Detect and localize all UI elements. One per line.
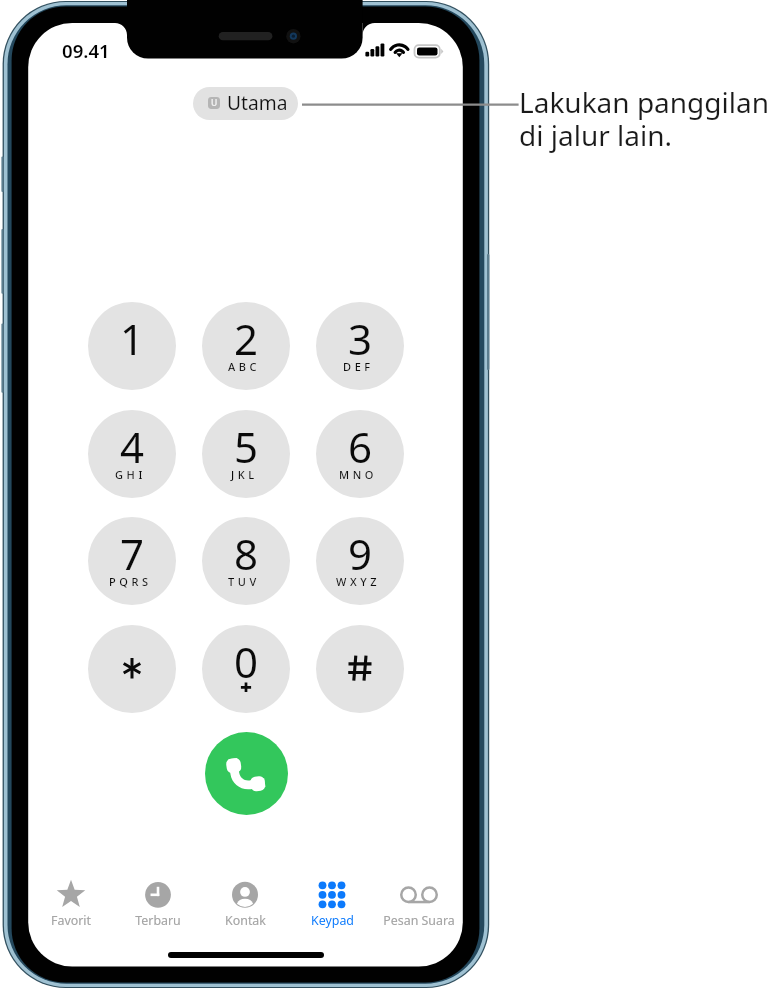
staticText: 7 bbox=[120, 525, 145, 582]
staticText: GHI bbox=[115, 467, 146, 482]
button[interactable]: 6 bbox=[316, 410, 404, 498]
button[interactable]: 3 bbox=[316, 302, 404, 390]
button[interactable]: 8 bbox=[202, 517, 290, 605]
button[interactable]: Keypad bbox=[289, 874, 375, 928]
button[interactable]: Star bbox=[88, 625, 176, 713]
staticText: Terbaru bbox=[135, 912, 181, 929]
staticText: Kontak bbox=[225, 912, 266, 929]
button[interactable]: 1 bbox=[88, 302, 176, 390]
staticText: 09.41 bbox=[62, 38, 110, 63]
button[interactable]: 7 bbox=[88, 517, 176, 605]
staticText: MNO bbox=[339, 467, 378, 482]
button[interactable]: Pound bbox=[316, 625, 404, 713]
button[interactable]: 2 bbox=[202, 302, 290, 390]
button[interactable]: U bbox=[193, 87, 298, 120]
staticText: WXYZ bbox=[336, 574, 381, 589]
staticText: Keypad bbox=[311, 912, 354, 929]
staticText: ABC bbox=[228, 359, 261, 374]
button[interactable]: 4 bbox=[88, 410, 176, 498]
button[interactable]: Favorit bbox=[28, 874, 114, 928]
staticText: DEF bbox=[343, 359, 374, 374]
button[interactable]: Kontak bbox=[202, 874, 288, 928]
staticText: Pesan Suara bbox=[383, 912, 455, 929]
button[interactable]: 5 bbox=[202, 410, 290, 498]
staticText: 8 bbox=[234, 525, 259, 582]
staticText: Favorit bbox=[51, 912, 91, 929]
staticText: 9 bbox=[348, 525, 373, 582]
button[interactable]: 0 bbox=[202, 625, 290, 713]
staticText: U bbox=[211, 97, 218, 109]
staticText: 6 bbox=[348, 418, 373, 475]
staticText: 5 bbox=[234, 418, 259, 475]
staticText: JKL bbox=[231, 467, 258, 482]
staticText: 3 bbox=[348, 310, 373, 367]
staticText: 1 bbox=[120, 310, 145, 367]
button[interactable]: Pesan Suara bbox=[376, 874, 462, 928]
staticText: Lakukan panggilan di jalur lain. bbox=[519, 83, 770, 154]
staticText: PQRS bbox=[109, 574, 152, 589]
staticText: TUV bbox=[228, 574, 260, 589]
staticText: 2 bbox=[234, 310, 259, 367]
staticText: 0 bbox=[234, 633, 259, 690]
staticText: 4 bbox=[120, 418, 145, 475]
staticText: Utama bbox=[227, 89, 288, 115]
button[interactable]: 9 bbox=[316, 517, 404, 605]
button[interactable]: Call bbox=[205, 732, 288, 815]
button[interactable]: Terbaru bbox=[115, 874, 201, 928]
